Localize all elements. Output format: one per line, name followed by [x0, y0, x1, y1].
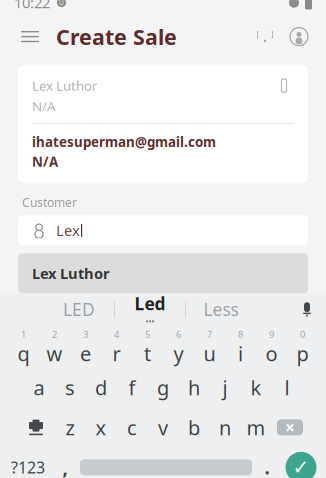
button[interactable]: Edit	[274, 77, 294, 95]
button[interactable]: d	[86, 371, 116, 403]
staticText: Lex	[56, 221, 80, 240]
staticText: Lex Luthor	[32, 77, 98, 94]
button[interactable]: Connection status	[248, 19, 282, 55]
staticText: v	[158, 414, 168, 441]
staticText: 4	[114, 328, 119, 340]
staticText: Led	[134, 292, 165, 315]
staticText: z	[65, 414, 74, 441]
button[interactable]: 5	[132, 331, 162, 363]
staticText: f	[128, 374, 135, 401]
button[interactable]: ,	[52, 452, 78, 478]
staticText: b	[188, 414, 200, 441]
staticText: j	[222, 374, 227, 401]
button[interactable]: f	[117, 371, 147, 403]
staticText: 1	[21, 328, 26, 340]
staticText: w	[46, 340, 62, 367]
staticText: .	[264, 455, 269, 478]
button[interactable]: Less	[186, 294, 256, 324]
button[interactable]: Space	[80, 452, 252, 478]
staticText: y	[173, 340, 183, 367]
staticText: ×	[285, 416, 295, 439]
staticText: ✓	[292, 456, 309, 478]
button[interactable]: 2	[39, 331, 69, 363]
staticText: 0	[300, 328, 305, 340]
button[interactable]: ?123	[6, 452, 50, 478]
button[interactable]: l	[272, 371, 302, 403]
staticText: ?123	[11, 457, 45, 478]
staticText: 9	[269, 328, 274, 340]
button[interactable]: 6	[163, 331, 193, 363]
button[interactable]: v	[148, 411, 178, 443]
staticText: ihatesuperman@gmail.com	[32, 133, 216, 151]
button[interactable]: 0	[287, 331, 317, 363]
staticText: ,	[62, 455, 67, 478]
button[interactable]: g	[148, 371, 178, 403]
button[interactable]: 3	[70, 331, 100, 363]
staticText: 5	[145, 328, 150, 340]
button[interactable]: z	[55, 411, 85, 443]
button[interactable]: LED	[44, 294, 114, 324]
staticText: d	[95, 374, 107, 401]
button[interactable]: a	[24, 371, 54, 403]
staticText: m	[246, 414, 265, 441]
staticText: k	[250, 374, 261, 401]
staticText: a	[33, 374, 44, 401]
staticText: p	[296, 340, 308, 367]
staticText: N/A	[32, 153, 58, 170]
staticText: c	[127, 414, 137, 441]
staticText: l	[284, 374, 289, 401]
staticText: s	[65, 374, 75, 401]
staticText: Less	[203, 298, 238, 321]
button[interactable]: Lex Luthor	[18, 253, 308, 293]
button[interactable]: Delete	[272, 411, 308, 443]
staticText: Customer	[22, 194, 77, 210]
staticText: o	[265, 340, 277, 367]
button[interactable]: Led	[115, 294, 185, 324]
staticText: e	[80, 340, 91, 367]
staticText: Create Sale	[56, 22, 177, 51]
button[interactable]: Menu	[10, 19, 50, 55]
button[interactable]: Shift	[18, 411, 54, 443]
button[interactable]: Lex	[18, 215, 308, 245]
button[interactable]: 9	[256, 331, 286, 363]
button[interactable]: h	[179, 371, 209, 403]
button[interactable]: c	[117, 411, 147, 443]
staticText: •••	[145, 316, 154, 327]
staticText: U	[59, 0, 64, 7]
button[interactable]: b	[179, 411, 209, 443]
staticText: x	[95, 414, 106, 441]
staticText: 8	[238, 328, 243, 340]
button[interactable]: 4	[101, 331, 131, 363]
staticText: n	[219, 414, 231, 441]
button[interactable]: s	[55, 371, 85, 403]
button[interactable]: k	[241, 371, 271, 403]
staticText: 3	[83, 328, 88, 340]
staticText: u	[203, 340, 215, 367]
button[interactable]: Done	[282, 451, 320, 478]
button[interactable]: 1	[8, 331, 38, 363]
staticText: r	[112, 340, 120, 367]
button[interactable]: n	[210, 411, 240, 443]
staticText: 10:22	[14, 0, 50, 12]
button[interactable]: j	[210, 371, 240, 403]
staticText: 7	[207, 328, 212, 340]
staticText: g	[157, 374, 169, 401]
button[interactable]: x	[86, 411, 116, 443]
button[interactable]: m	[241, 411, 271, 443]
button[interactable]: 7	[194, 331, 224, 363]
button[interactable]: 8	[225, 331, 255, 363]
staticText: 6	[176, 328, 181, 340]
staticText: Lex Luthor	[32, 264, 110, 283]
button[interactable]: Account	[282, 19, 316, 55]
button[interactable]: .	[254, 452, 280, 478]
staticText: q	[17, 340, 29, 367]
staticText: 2	[52, 328, 57, 340]
staticText: t	[144, 340, 151, 367]
staticText: h	[188, 374, 200, 401]
staticText: i	[238, 340, 243, 367]
staticText: N/A	[32, 97, 56, 115]
button[interactable]: Voice input	[294, 294, 320, 324]
staticText: LED	[63, 298, 95, 321]
